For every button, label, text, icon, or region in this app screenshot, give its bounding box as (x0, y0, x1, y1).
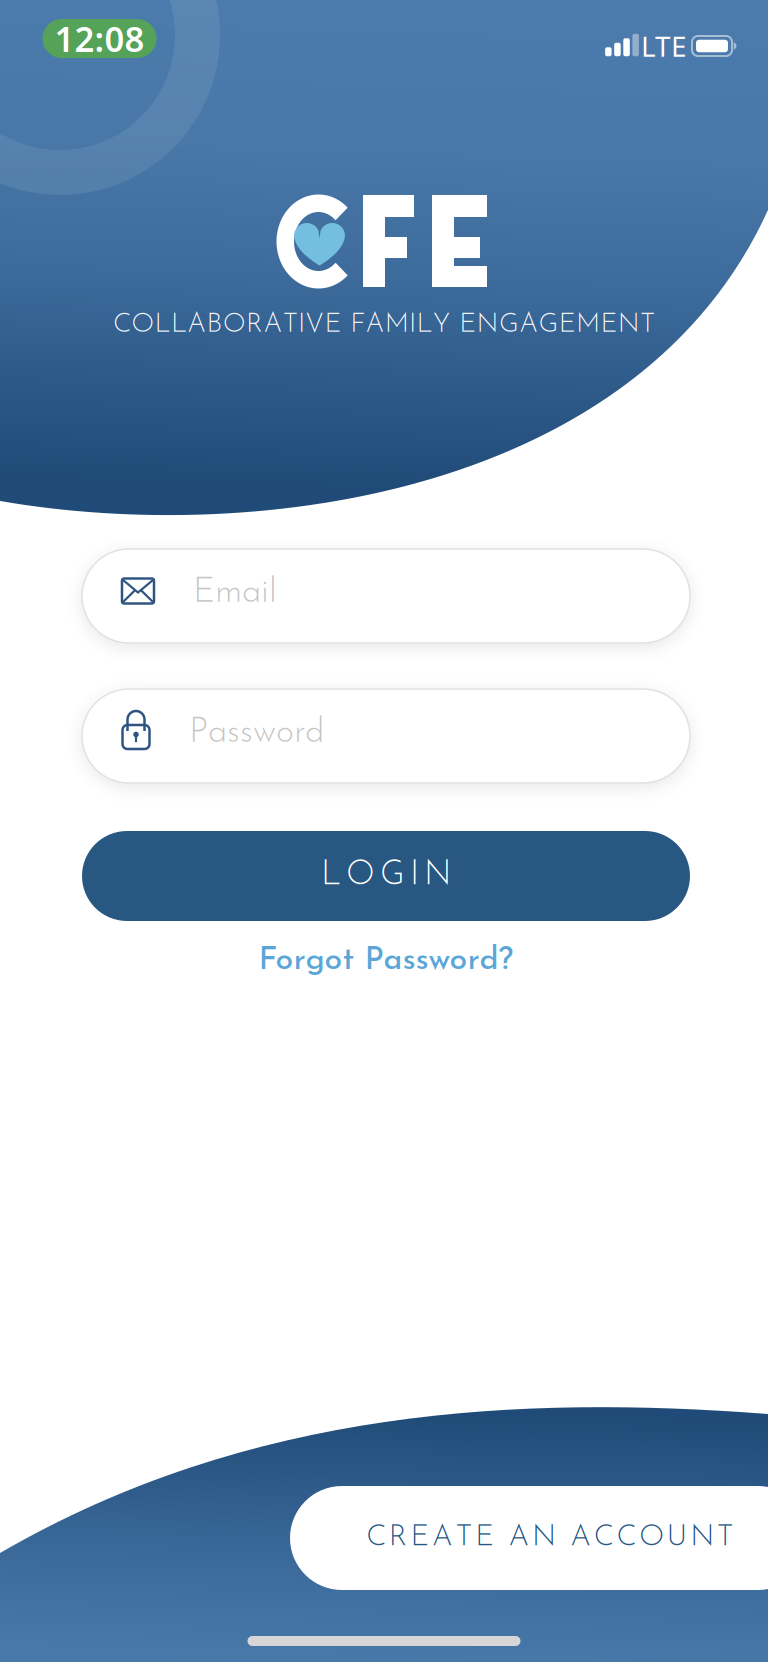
staticText: G (380, 859, 405, 893)
staticText: LTE (641, 27, 687, 65)
button[interactable]: C (290, 1486, 768, 1590)
staticText: R (246, 312, 263, 338)
staticText: A (263, 312, 282, 338)
staticText: N (477, 312, 499, 338)
staticText: N (690, 1523, 714, 1553)
staticText: A (365, 312, 384, 338)
staticText: A (432, 1523, 453, 1553)
staticText: N (424, 859, 451, 893)
staticText: T (640, 312, 655, 338)
staticText: E (559, 312, 576, 338)
staticText: E (459, 312, 476, 338)
staticText: Password (189, 716, 324, 750)
staticText: G (499, 312, 519, 338)
staticText: B (206, 312, 222, 338)
staticText: O (639, 1523, 664, 1553)
staticText: V (305, 312, 324, 338)
staticText: C (616, 1523, 636, 1553)
staticText: I (409, 312, 416, 338)
staticText: E (475, 1523, 494, 1553)
staticText: I (410, 859, 419, 893)
staticText: Email (193, 576, 277, 610)
button[interactable]: Email (82, 549, 690, 643)
staticText: L (416, 312, 432, 338)
staticText: T (717, 1523, 734, 1553)
staticText: E (410, 1523, 429, 1553)
staticText: I (298, 312, 305, 338)
staticText: A (187, 312, 206, 338)
staticText: A (519, 312, 538, 338)
staticText: F (350, 312, 365, 338)
staticText: C (366, 1523, 386, 1553)
staticText: C (594, 1523, 614, 1553)
staticText: 12:08 (54, 15, 144, 61)
staticText: O (131, 312, 154, 338)
staticText: M (385, 312, 409, 338)
staticText: T (456, 1523, 473, 1553)
button[interactable]: L (82, 831, 690, 921)
staticText: M (576, 312, 600, 338)
staticText: L (321, 859, 341, 893)
staticText: O (223, 312, 246, 338)
staticText: R (389, 1523, 408, 1553)
staticText: L (171, 312, 187, 338)
staticText: U (667, 1523, 688, 1553)
staticText: A (570, 1523, 591, 1553)
button[interactable]: Password (82, 689, 690, 783)
staticText: G (538, 312, 558, 338)
staticText: N (532, 1523, 556, 1553)
staticText: E (600, 312, 617, 338)
staticText: L (155, 312, 171, 338)
staticText: N (618, 312, 640, 338)
staticText: T (283, 312, 298, 338)
staticText: C (113, 312, 131, 338)
staticText: A (508, 1523, 529, 1553)
staticText: E (325, 312, 342, 338)
staticText: Y (433, 312, 451, 338)
button[interactable]: Forgot Password? (258, 945, 513, 977)
staticText: O (346, 859, 375, 893)
staticText: Forgot Password? (258, 945, 513, 977)
